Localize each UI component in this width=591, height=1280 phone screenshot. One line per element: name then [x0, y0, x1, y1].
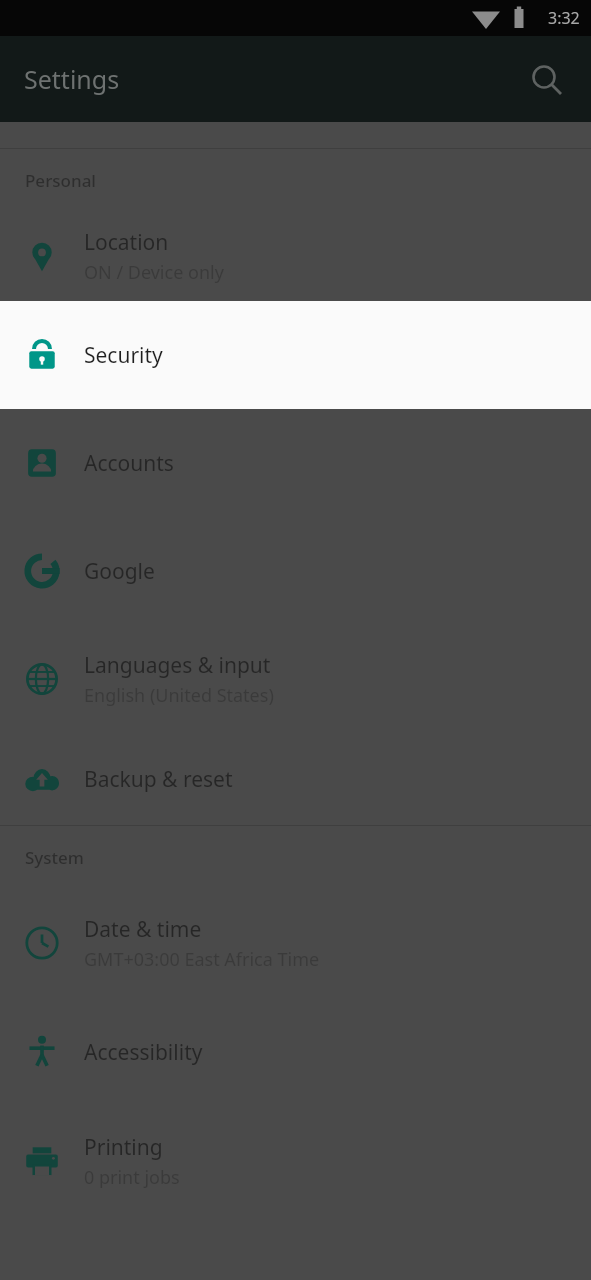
staticText: 0 print jobs — [84, 1165, 180, 1190]
staticText: Accessibility — [84, 1038, 203, 1067]
staticText: Location — [84, 228, 169, 257]
staticText: Printing — [84, 1133, 163, 1162]
button[interactable]: Printing — [0, 1106, 591, 1216]
button[interactable]: Accounts — [0, 409, 591, 517]
staticText: Backup & reset — [84, 765, 233, 794]
staticText: Security — [84, 341, 163, 370]
staticText: Google — [84, 557, 155, 586]
staticText: Settings — [24, 62, 120, 96]
staticText: Personal — [25, 169, 96, 192]
staticText: System — [25, 846, 84, 869]
staticText: ON / Device only — [84, 260, 224, 285]
button[interactable]: Location — [0, 211, 591, 301]
button[interactable]: Languages & input — [0, 625, 591, 733]
button[interactable]: Security — [0, 301, 591, 409]
staticText: Accounts — [84, 449, 174, 478]
button[interactable]: Google — [0, 517, 591, 625]
button[interactable]: Date & time — [0, 888, 591, 998]
button[interactable]: Search — [523, 57, 567, 101]
staticText: 3:32 — [548, 7, 580, 29]
staticText: Languages & input — [84, 651, 271, 680]
button[interactable]: Accessibility — [0, 998, 591, 1106]
staticText: English (United States) — [84, 683, 274, 708]
staticText: GMT+03:00 East Africa Time — [84, 947, 320, 972]
staticText: Date & time — [84, 915, 202, 944]
button[interactable]: Backup & reset — [0, 733, 591, 825]
